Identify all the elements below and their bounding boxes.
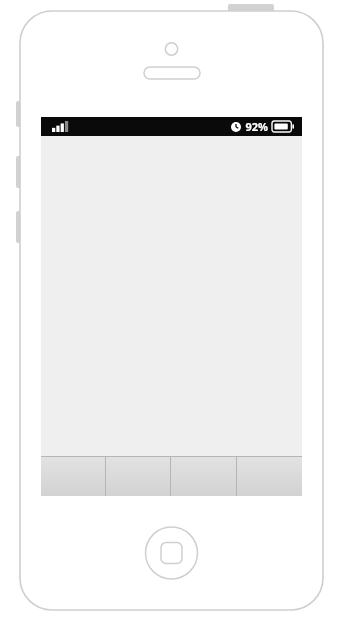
button[interactable]: Tab 1 [41, 457, 105, 496]
button[interactable]: Tab 4 [237, 457, 302, 496]
staticText: 92% [245, 119, 268, 134]
button[interactable]: Tab 2 [106, 457, 170, 496]
button[interactable]: Tab 3 [171, 457, 236, 496]
